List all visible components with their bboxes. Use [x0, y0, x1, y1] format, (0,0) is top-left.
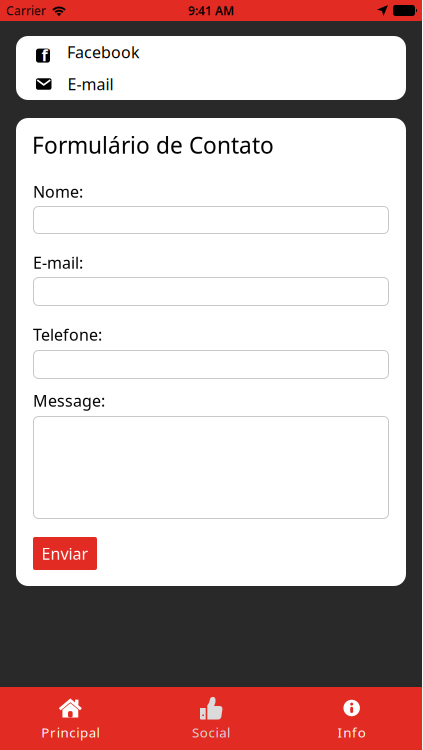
staticText: Principal [41, 723, 99, 741]
button[interactable]: Info [281, 687, 422, 750]
button[interactable]: Social [141, 687, 281, 750]
staticText: E-mail: [33, 252, 83, 273]
staticText: Formulário de Contato [32, 130, 274, 160]
staticText: f [41, 44, 47, 66]
staticText: 9:41 AM [188, 2, 234, 18]
staticText: Telefone: [33, 324, 102, 345]
button[interactable]: Principal [0, 687, 141, 750]
staticText: Info [337, 723, 366, 741]
button[interactable]: E-mail [16, 68, 406, 100]
button[interactable]: Enviar [33, 537, 97, 570]
staticText: E-mail [67, 73, 113, 95]
staticText: Nome: [33, 181, 83, 202]
staticText: Social [192, 723, 230, 741]
staticText: Message: [33, 390, 105, 411]
staticText: Carrier [6, 2, 46, 18]
staticText: Enviar [41, 543, 88, 564]
button[interactable]: f [16, 36, 406, 68]
staticText: Facebook [67, 41, 140, 63]
